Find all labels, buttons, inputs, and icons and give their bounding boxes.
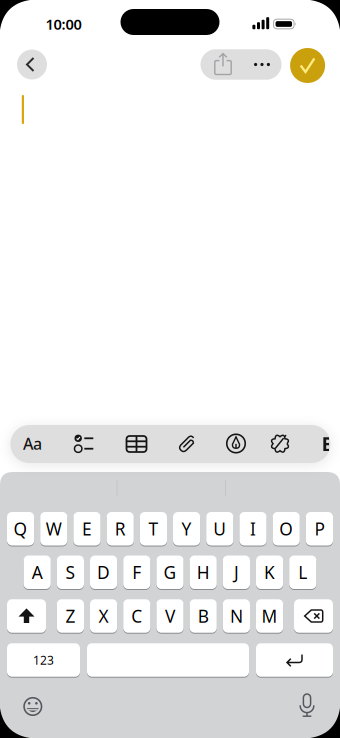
button[interactable]: C <box>123 599 150 633</box>
staticText: W <box>46 517 62 540</box>
button[interactable]: Delete <box>294 599 333 633</box>
staticText: G <box>163 561 176 584</box>
staticText: H <box>197 561 210 584</box>
button[interactable]: V <box>156 599 184 633</box>
staticText: Aa <box>23 433 42 454</box>
button[interactable]: P <box>306 512 333 545</box>
staticText: I <box>250 517 256 540</box>
button[interactable]: Done <box>290 48 325 83</box>
staticText: S <box>65 561 75 584</box>
staticText: 10:00 <box>45 14 81 34</box>
button[interactable]: X <box>90 599 117 633</box>
staticText: X <box>99 604 109 627</box>
button[interactable]: L <box>289 555 316 589</box>
button[interactable]: U <box>206 512 233 545</box>
button[interactable]: Emoji <box>18 691 48 721</box>
staticText: R <box>115 517 126 540</box>
button[interactable]: Markup <box>214 424 258 462</box>
staticText: F <box>132 561 141 584</box>
button[interactable]: Shift <box>7 599 46 633</box>
staticText: J <box>234 561 239 584</box>
button[interactable]: E <box>73 512 101 545</box>
button[interactable]: J <box>223 555 250 589</box>
button[interactable]: G <box>156 555 184 589</box>
staticText: C <box>131 604 142 627</box>
button[interactable]: Handwriting <box>260 425 300 463</box>
staticText: O <box>279 517 293 540</box>
button[interactable]: R <box>107 512 134 545</box>
staticText: A <box>32 561 43 584</box>
button[interactable]: B <box>190 599 217 633</box>
button[interactable]: M <box>256 599 283 633</box>
button[interactable]: I <box>239 512 267 545</box>
button[interactable]: Checklist <box>62 424 106 462</box>
button[interactable]: A <box>24 555 51 589</box>
staticText: B <box>322 432 334 456</box>
staticText: L <box>298 561 307 584</box>
staticText: V <box>165 604 175 627</box>
staticText: K <box>264 561 275 584</box>
button[interactable]: Return <box>256 643 333 677</box>
button[interactable]: S <box>57 555 84 589</box>
staticText: U <box>213 517 226 540</box>
staticText: P <box>314 517 324 540</box>
button[interactable]: Table <box>114 425 158 463</box>
button[interactable]: Back <box>17 49 47 79</box>
button[interactable]: Dictate <box>292 691 322 721</box>
button[interactable]: Q <box>7 512 34 545</box>
button[interactable]: W <box>40 512 67 545</box>
button[interactable]: N <box>223 599 250 633</box>
button[interactable]: Bold <box>322 425 329 463</box>
button[interactable]: O <box>273 512 300 545</box>
staticText: M <box>262 604 278 627</box>
staticText: Y <box>182 517 192 540</box>
button[interactable]: Attach <box>165 424 209 462</box>
staticText: N <box>230 604 243 627</box>
staticText: E <box>82 517 92 540</box>
button[interactable]: Share <box>203 49 243 80</box>
button[interactable]: T <box>140 512 167 545</box>
staticText: Q <box>14 517 28 540</box>
button[interactable]: D <box>90 555 117 589</box>
staticText: T <box>148 517 158 540</box>
staticText: B <box>198 604 209 627</box>
button[interactable]: More <box>242 49 282 80</box>
button[interactable]: Y <box>173 512 200 545</box>
button[interactable]: Format <box>10 424 54 462</box>
staticText: D <box>97 561 110 584</box>
button[interactable]: F <box>123 555 150 589</box>
button[interactable]: Z <box>57 599 84 633</box>
button[interactable]: K <box>256 555 283 589</box>
staticText: 123 <box>33 652 54 668</box>
staticText: Z <box>65 604 75 627</box>
button[interactable]: space <box>87 643 249 677</box>
button[interactable]: 123 <box>7 643 80 677</box>
button[interactable]: H <box>190 555 217 589</box>
